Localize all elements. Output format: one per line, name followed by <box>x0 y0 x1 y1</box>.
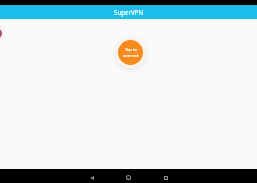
button[interactable]: Open menu <box>0 25 5 41</box>
button[interactable]: Recent apps <box>159 171 172 183</box>
button[interactable]: Back <box>85 171 98 183</box>
staticText: Tap to connect <box>123 47 139 58</box>
button[interactable]: Home <box>122 171 135 183</box>
staticText: SuperVPN <box>114 8 144 16</box>
button[interactable]: Tap to connect <box>115 37 146 68</box>
